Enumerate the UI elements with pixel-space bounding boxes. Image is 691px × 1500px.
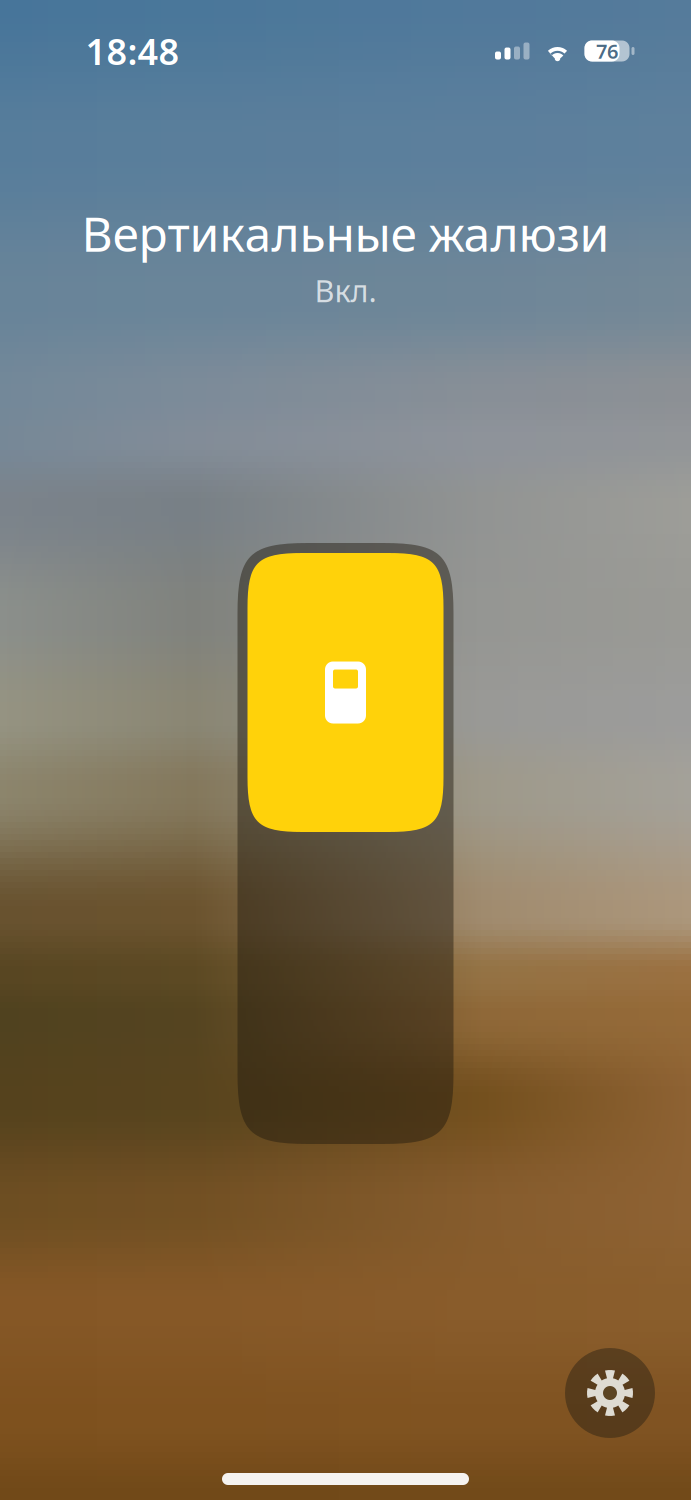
staticText: 18:48 bbox=[85, 27, 179, 75]
staticText: 76 bbox=[596, 38, 618, 64]
button[interactable]: Settings bbox=[565, 1348, 655, 1438]
staticText: Вкл. bbox=[314, 270, 376, 311]
button[interactable]: Вертикальные жалюзи, Вкл. bbox=[237, 543, 453, 1144]
staticText: Вертикальные жалюзи bbox=[81, 201, 609, 265]
